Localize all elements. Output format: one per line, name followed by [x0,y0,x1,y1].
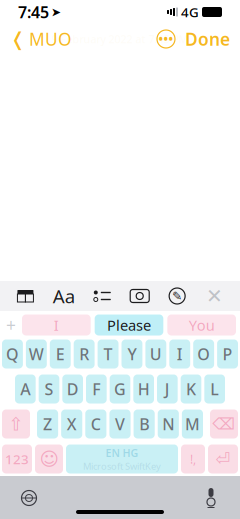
staticText: S [44,378,53,400]
staticText: X [67,413,77,435]
staticText: D [67,378,79,400]
staticText: ✎ [172,289,182,303]
button[interactable]: T [98,339,118,368]
button[interactable]: V [109,409,130,438]
button[interactable]: Text format [51,284,77,308]
staticText: ✕ [206,285,223,307]
button[interactable]: A [15,374,36,403]
button[interactable]: Emoji [35,444,63,473]
staticText: Please [107,315,151,335]
staticText: K [186,378,196,400]
button[interactable]: I [22,314,91,335]
button[interactable]: K [181,374,201,403]
button[interactable]: Y [121,339,142,368]
staticText: T [103,343,112,365]
staticText: M [185,413,200,435]
staticText: U [150,343,162,365]
button[interactable]: U [145,339,166,368]
staticText: N [162,413,174,435]
staticText: I [54,315,59,335]
button[interactable]: W [26,339,47,368]
staticText: O [197,343,210,365]
button[interactable]: G [110,374,130,403]
staticText: C [91,413,101,435]
staticText: + [6,313,16,336]
button[interactable]: You [167,314,236,335]
button[interactable]: More options [157,30,175,48]
button[interactable]: B [134,409,155,438]
button[interactable]: Space [66,444,178,473]
staticText: A [20,378,30,400]
staticText: Microsoft SwiftKey [83,460,161,472]
staticText: 7:45 [18,1,49,23]
staticText: ⌫ [212,415,235,433]
staticText: ⇧ [8,413,24,435]
button[interactable]: Table [13,284,37,308]
button[interactable]: R [74,339,95,368]
staticText: H [138,378,150,400]
staticText: L [210,378,219,400]
button[interactable]: J [157,374,178,403]
staticText: ➤ [51,5,61,19]
button[interactable]: Done [175,21,230,56]
staticText: W [29,343,44,365]
staticText: Done [185,27,230,50]
staticText: E [56,343,65,365]
button[interactable]: N [158,409,179,438]
button[interactable]: Return [208,444,238,473]
button[interactable]: Q [2,339,23,368]
staticText: ••• [158,31,173,47]
button[interactable]: Delete [210,409,238,438]
button[interactable]: E [50,339,71,368]
button[interactable]: O [193,339,214,368]
button[interactable]: P [217,339,238,368]
staticText: Aa [53,284,75,308]
button[interactable]: I [169,339,190,368]
staticText: V [115,413,125,435]
button[interactable]: X [61,409,82,438]
button[interactable]: Dictation [200,487,222,509]
button[interactable]: F [86,374,107,403]
staticText: 123 [5,450,29,468]
staticText: B [139,413,149,435]
staticText: R [79,343,89,365]
button[interactable]: Punctuation [181,444,205,473]
staticText: J [165,378,170,400]
button[interactable]: Numbers [2,444,32,473]
staticText: EN HG [105,446,138,460]
button[interactable]: C [85,409,106,438]
button[interactable]: Switch keyboard [18,487,40,509]
staticText: ❬ [10,28,26,50]
button[interactable]: L [204,374,225,403]
button[interactable]: Add [4,315,18,335]
staticText: I [177,343,183,365]
staticText: ☺ [39,448,58,470]
staticText: Y [127,343,136,365]
button[interactable]: S [39,374,59,403]
staticText: Q [6,343,19,365]
staticText: 4G [181,3,199,21]
button[interactable]: D [62,374,83,403]
button[interactable]: Please [95,314,163,335]
staticText: MUO [29,27,72,50]
button[interactable]: Close keyboard [203,284,227,308]
button[interactable]: Shift [2,409,30,438]
staticText: F [92,378,100,400]
staticText: 9 February 2022 at 7:45 PM [51,32,188,46]
staticText: Z [43,413,52,435]
button[interactable]: Checklist [90,284,114,308]
staticText: G [114,378,126,400]
button[interactable]: Camera [128,284,152,308]
button[interactable]: H [133,374,154,403]
staticText: You [189,315,215,335]
staticText: ⏎ [215,449,230,469]
button[interactable]: M [182,409,203,438]
button[interactable]: Z [37,409,58,438]
staticText: P [223,343,233,365]
button[interactable]: ❬ [10,21,72,56]
button[interactable]: Markup [165,284,189,308]
staticText: !, [190,451,196,467]
